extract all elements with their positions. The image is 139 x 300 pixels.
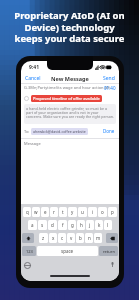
- staticText: 9:41: [29, 64, 39, 71]
- button[interactable]: Delete: [106, 233, 118, 243]
- button[interactable]: b: [76, 233, 84, 243]
- button[interactable]: c: [58, 233, 66, 243]
- staticText: i: [92, 209, 94, 215]
- button[interactable]: e: [41, 207, 49, 217]
- staticText: y: [71, 209, 74, 215]
- staticText: Cancel: [25, 75, 41, 82]
- button[interactable]: d: [48, 220, 57, 230]
- button[interactable]: Numbers: [22, 246, 36, 256]
- button[interactable]: Proposed timeline of offer available: [31, 95, 102, 102]
- button[interactable]: q: [23, 207, 31, 217]
- staticText: 123: [26, 249, 33, 254]
- button[interactable]: s: [38, 220, 47, 230]
- button[interactable]: z: [39, 233, 48, 243]
- button[interactable]: x: [49, 233, 57, 243]
- button[interactable]: space: [37, 246, 98, 256]
- staticText: G.3Mn;Partytime/its wage and hour action…: [24, 85, 113, 90]
- button[interactable]: n: [85, 233, 93, 243]
- staticText: k: [98, 222, 101, 228]
- button[interactable]: a: [28, 220, 37, 230]
- staticText: m: [96, 235, 101, 241]
- staticText: l: [107, 222, 109, 228]
- staticText: s: [41, 222, 44, 228]
- button[interactable]: g: [68, 220, 76, 230]
- staticText: g: [71, 222, 74, 228]
- staticText: w: [34, 209, 38, 215]
- button[interactable]: v: [67, 233, 75, 243]
- staticText: u: [81, 209, 84, 215]
- staticText: return: [103, 249, 115, 254]
- staticText: Proprietary AIoD (AI on Device) technolo…: [13, 9, 126, 45]
- staticText: d: [51, 222, 54, 228]
- button[interactable]: m: [94, 233, 102, 243]
- button[interactable]: w: [32, 207, 40, 217]
- button[interactable]: t: [59, 207, 67, 217]
- button[interactable]: Return: [99, 246, 118, 256]
- button[interactable]: o: [98, 207, 107, 217]
- staticText: b: [79, 235, 82, 241]
- button[interactable]: u: [78, 207, 87, 217]
- staticText: v: [70, 235, 73, 241]
- staticText: x: [52, 235, 55, 241]
- staticText: e: [44, 209, 47, 215]
- staticText: Done: [103, 128, 115, 134]
- staticText: j: [89, 222, 91, 228]
- staticText: To:: [24, 129, 30, 134]
- staticText: r: [53, 209, 55, 215]
- button[interactable]: p: [108, 207, 117, 217]
- button[interactable]: j: [86, 220, 94, 230]
- button[interactable]: Send: [102, 74, 116, 83]
- button[interactable]: y: [68, 207, 77, 217]
- staticText: c: [61, 235, 64, 241]
- staticText: New Message: [51, 75, 89, 82]
- button[interactable]: k: [95, 220, 103, 230]
- staticText: t: [62, 209, 64, 215]
- staticText: n: [88, 235, 91, 241]
- staticText: ahewbck@david-coffee.website: [33, 129, 86, 134]
- button[interactable]: Cancel: [24, 74, 42, 83]
- staticText: h: [80, 222, 83, 228]
- button[interactable]: Done: [102, 127, 116, 135]
- button[interactable]: f: [58, 220, 67, 230]
- button[interactable]: ahewbck@david-coffee.website: [31, 128, 88, 135]
- staticText: f: [62, 222, 64, 228]
- button[interactable]: l: [104, 220, 112, 230]
- button[interactable]: r: [50, 207, 58, 217]
- staticText: a: [31, 222, 34, 228]
- button[interactable]: Shift: [22, 233, 34, 243]
- staticText: 01:40: [104, 85, 116, 91]
- staticText: Message: [24, 141, 41, 146]
- staticText: Send: [103, 75, 115, 82]
- staticText: Proposed timeline of offer available: [33, 96, 100, 101]
- staticText: q: [26, 209, 29, 215]
- staticText: a hand-held electric coffee grinder, so …: [26, 106, 114, 120]
- button[interactable]: h: [77, 220, 85, 230]
- staticText: p: [111, 209, 114, 215]
- staticText: z: [42, 235, 45, 241]
- staticText: o: [101, 209, 104, 215]
- staticText: space: [61, 248, 74, 254]
- button[interactable]: i: [88, 207, 97, 217]
